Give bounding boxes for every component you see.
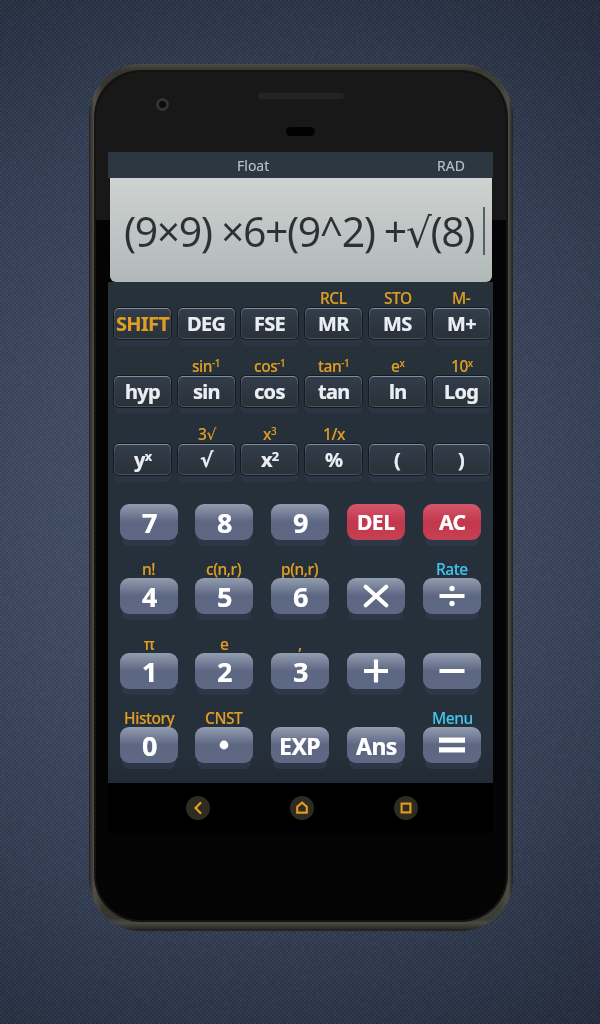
staticText: 1/x xyxy=(323,423,345,444)
button[interactable]: SHIFT xyxy=(115,309,170,338)
button[interactable]: x2 xyxy=(242,445,297,474)
staticText: RCL xyxy=(320,287,347,308)
button[interactable]: 0 xyxy=(120,727,178,763)
staticText: e xyxy=(220,633,229,654)
staticText: (9×9) ×6+(9^2) +√(8) xyxy=(124,203,475,259)
button[interactable] xyxy=(347,578,405,614)
button[interactable]: FSE xyxy=(242,309,297,338)
staticText: 1 xyxy=(142,653,157,689)
staticText: cos xyxy=(254,378,285,405)
button[interactable]: 6 xyxy=(271,578,329,614)
button[interactable]: tan xyxy=(306,377,361,406)
button[interactable]: sin xyxy=(179,377,234,406)
button[interactable]: √ xyxy=(179,445,234,474)
staticText: tan xyxy=(318,378,350,405)
staticText: √ xyxy=(200,448,213,471)
button[interactable]: MS xyxy=(370,309,425,338)
staticText: , xyxy=(298,633,302,654)
staticText: MS xyxy=(383,310,412,337)
staticText: x2 xyxy=(261,446,279,473)
button[interactable] xyxy=(347,653,405,689)
staticText: sin xyxy=(193,378,220,405)
button[interactable]: 2 xyxy=(195,653,253,689)
button[interactable]: yx xyxy=(115,445,170,474)
staticText: 4 xyxy=(142,578,157,614)
button[interactable]: ( xyxy=(370,445,425,474)
staticText: 0 xyxy=(142,727,157,763)
button[interactable]: MR xyxy=(306,309,361,338)
staticText: sin-1 xyxy=(192,355,221,376)
staticText: n! xyxy=(142,558,156,579)
button[interactable]: DEL xyxy=(347,504,405,540)
button[interactable]: Log xyxy=(434,377,489,406)
staticText: 2 xyxy=(217,653,232,689)
staticText: RAD xyxy=(437,156,465,175)
staticText: 8 xyxy=(217,504,232,540)
staticText: ( xyxy=(394,446,401,473)
staticText: Ans xyxy=(356,730,397,761)
staticText: p(n,r) xyxy=(281,558,319,579)
button[interactable]: ln xyxy=(370,377,425,406)
staticText: ln xyxy=(389,378,407,405)
button[interactable]: 8 xyxy=(195,504,253,540)
staticText: M- xyxy=(452,287,471,308)
button[interactable]: 4 xyxy=(120,578,178,614)
button[interactable]: DEG xyxy=(179,309,234,338)
button[interactable] xyxy=(423,653,481,689)
button[interactable]: ) xyxy=(434,445,489,474)
staticText: 9 xyxy=(293,504,308,540)
staticText: hyp xyxy=(125,378,160,405)
staticText: π xyxy=(144,633,155,654)
staticText: 10x xyxy=(451,355,473,376)
staticText: DEL xyxy=(357,508,395,537)
button[interactable]: cos xyxy=(242,377,297,406)
staticText: yx xyxy=(134,446,152,473)
staticText: CNST xyxy=(205,707,243,728)
staticText: x3 xyxy=(263,423,277,444)
button[interactable]: Ans xyxy=(347,727,405,763)
staticText: c(n,r) xyxy=(206,558,242,579)
button[interactable]: Home xyxy=(290,796,314,820)
button[interactable]: 1 xyxy=(120,653,178,689)
staticText: EXP xyxy=(279,730,321,761)
staticText: 3 xyxy=(293,653,308,689)
button[interactable]: 3 xyxy=(271,653,329,689)
staticText: ex xyxy=(391,355,405,376)
staticText: Menu xyxy=(432,707,473,728)
staticText: M+ xyxy=(447,310,476,337)
staticText: 6 xyxy=(293,578,308,614)
button[interactable]: Recents xyxy=(394,796,418,820)
button[interactable] xyxy=(423,727,481,763)
staticText: tan-1 xyxy=(318,355,350,376)
button[interactable]: EXP xyxy=(271,727,329,763)
button[interactable]: hyp xyxy=(115,377,170,406)
staticText: SHIFT xyxy=(116,310,170,337)
staticText: cos-1 xyxy=(254,355,286,376)
button[interactable]: 7 xyxy=(120,504,178,540)
button[interactable]: % xyxy=(306,445,361,474)
staticText: DEG xyxy=(187,310,226,337)
button[interactable]: M+ xyxy=(434,309,489,338)
button[interactable]: 5 xyxy=(195,578,253,614)
staticText: ) xyxy=(458,446,465,473)
button[interactable]: AC xyxy=(423,504,481,540)
staticText: Float xyxy=(237,156,270,175)
staticText: MR xyxy=(318,310,349,337)
button[interactable]: Back xyxy=(186,796,210,820)
staticText: Log xyxy=(444,378,479,405)
staticText: 3√ xyxy=(198,423,216,444)
staticText: FSE xyxy=(254,310,286,337)
button[interactable]: 9 xyxy=(271,504,329,540)
staticText: AC xyxy=(439,508,466,537)
staticText: STO xyxy=(384,287,412,308)
staticText: 5 xyxy=(217,578,232,614)
staticText: % xyxy=(325,446,343,473)
button[interactable] xyxy=(195,727,253,763)
staticText: 7 xyxy=(142,504,157,540)
staticText: History xyxy=(124,707,175,728)
button[interactable] xyxy=(423,578,481,614)
staticText: Rate xyxy=(436,558,468,579)
